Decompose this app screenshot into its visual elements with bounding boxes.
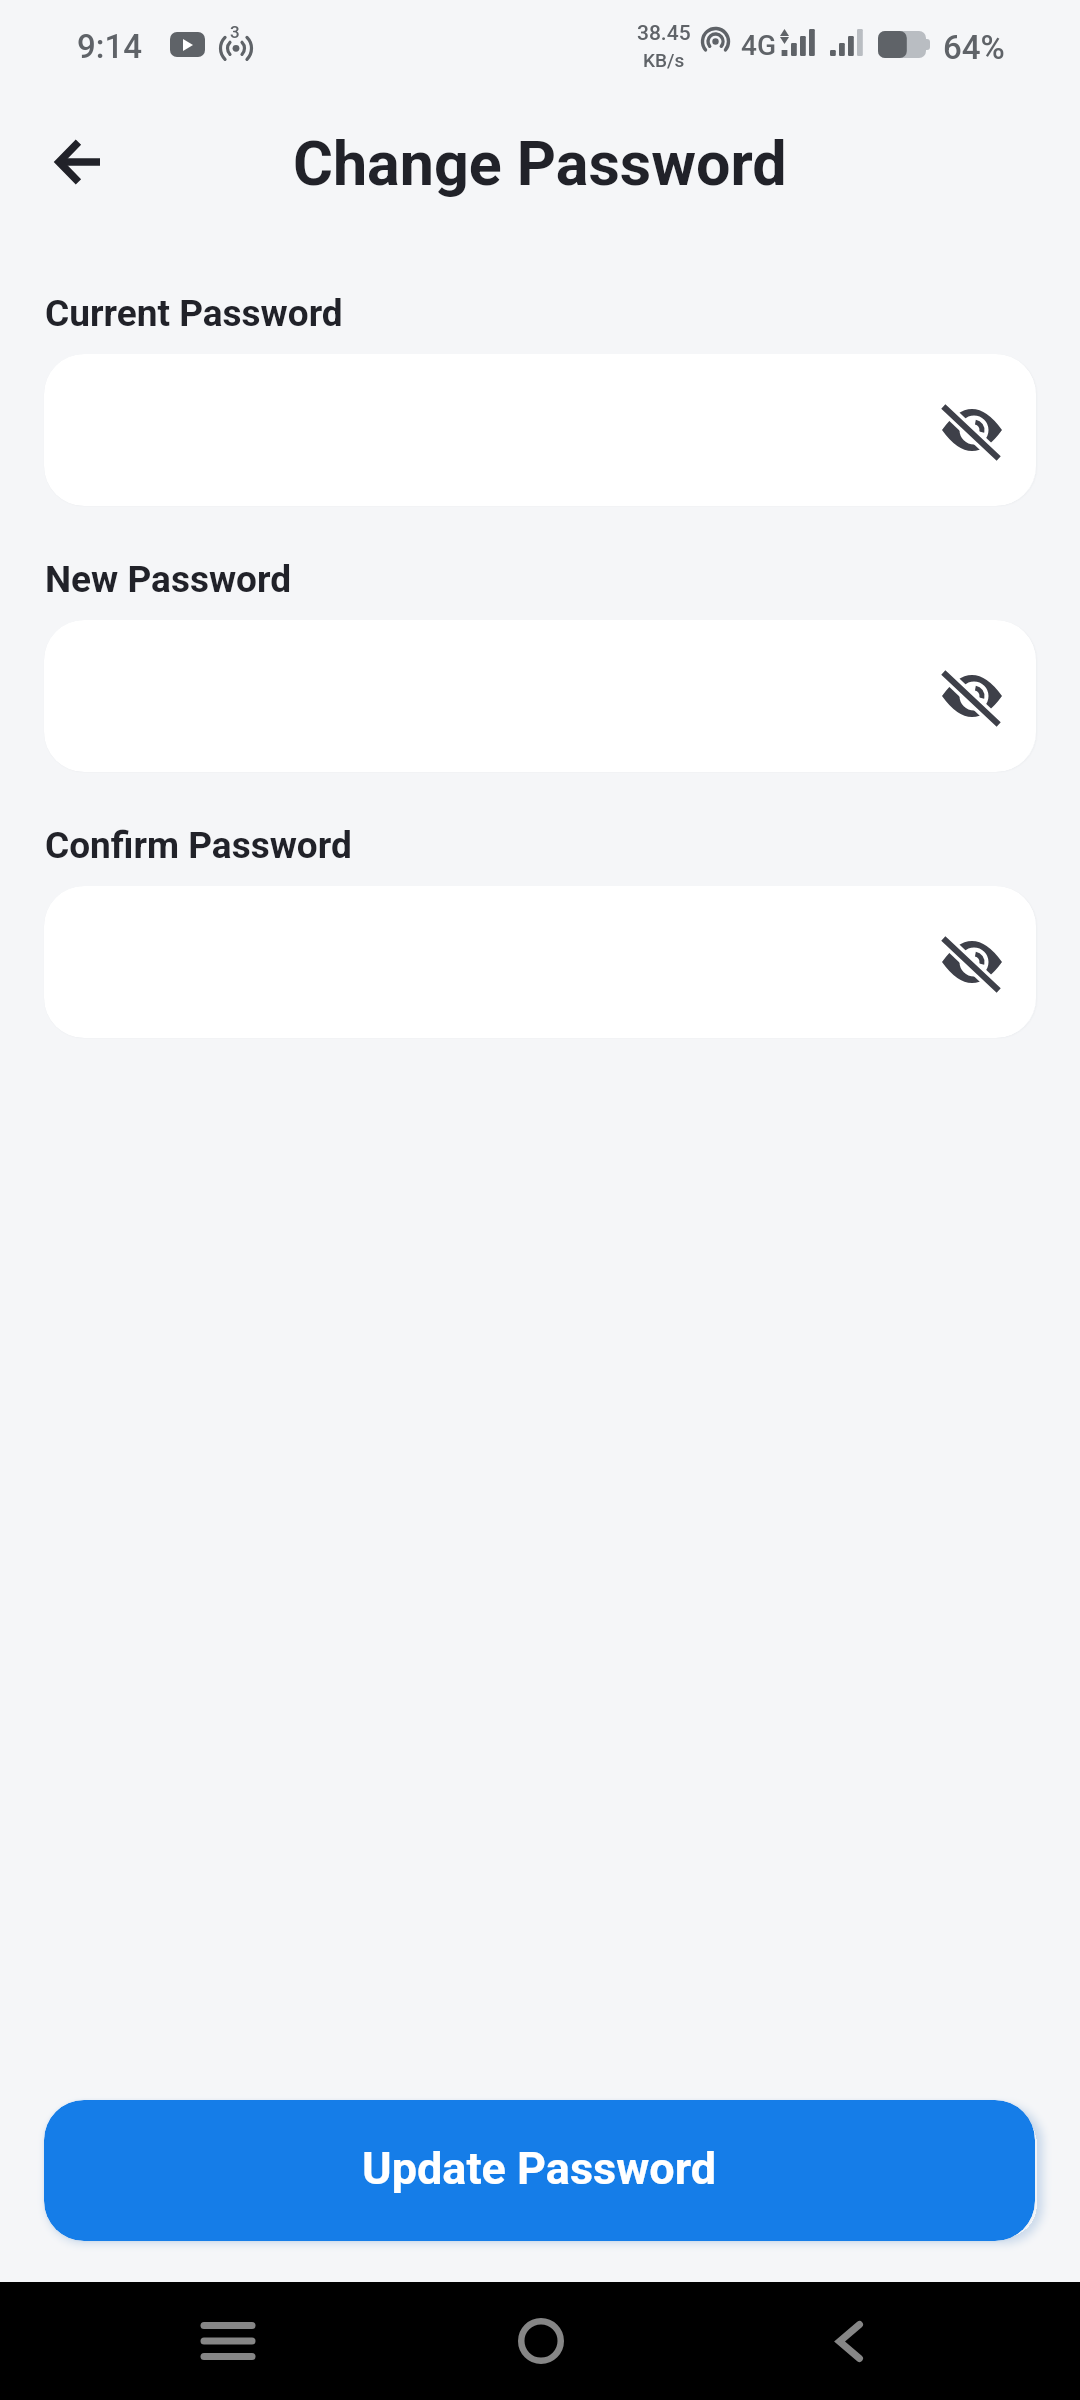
staticText: KB/s [643,49,685,71]
staticText: New Password [45,558,292,601]
button[interactable]: Toggle password visibility [934,924,1010,1000]
staticText: Update Password [362,2142,717,2195]
staticText: Current Password [45,292,343,335]
staticText: Confirm Password [45,824,352,867]
staticText: 38.45 [637,21,691,46]
staticText: 4G [741,29,776,62]
button[interactable]: Toggle password visibility [44,620,1036,772]
staticText: Change Password [293,128,787,199]
button[interactable]: Toggle password visibility [44,354,1036,506]
staticText: 9:14 [77,27,142,66]
button[interactable]: Update Password [44,2100,1035,2241]
button[interactable]: Toggle password visibility [934,658,1010,734]
button[interactable]: Home [481,2282,601,2400]
button[interactable]: Toggle password visibility [44,886,1036,1038]
staticText: 64% [943,28,1005,67]
button[interactable]: Recent apps [168,2282,288,2400]
staticText: 3 [230,22,240,42]
button[interactable]: Toggle password visibility [934,392,1010,468]
button[interactable]: Back [25,109,130,214]
button[interactable]: Back [789,2282,909,2400]
